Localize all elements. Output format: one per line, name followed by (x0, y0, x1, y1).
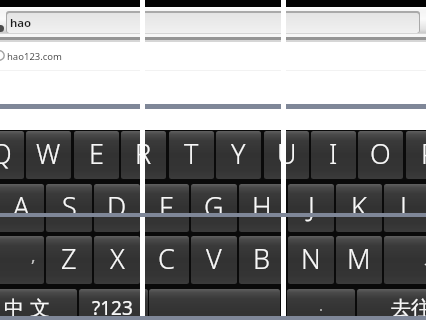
staticText: Z (61, 240, 77, 277)
staticText: C (158, 240, 175, 277)
button[interactable]: P (406, 131, 426, 179)
button[interactable]: Y (216, 131, 261, 179)
button[interactable]: Period (287, 289, 355, 320)
staticText: N (301, 240, 321, 277)
button[interactable]: U (264, 131, 309, 179)
button[interactable]: A (0, 184, 44, 232)
staticText: D (107, 188, 127, 225)
button[interactable]: Delete (384, 236, 426, 284)
button[interactable]: F (143, 184, 189, 232)
button[interactable]: Q (0, 131, 24, 179)
staticText: . (319, 295, 324, 315)
button[interactable]: H (239, 184, 285, 232)
button[interactable]: hao123.com (0, 46, 426, 66)
button[interactable]: L (384, 184, 426, 232)
staticText: T (184, 135, 199, 172)
button[interactable]: Symbols (79, 289, 148, 320)
staticText: 文 (30, 296, 50, 320)
staticText: F (159, 188, 173, 225)
staticText: hao (10, 15, 32, 31)
staticText: O (370, 135, 391, 172)
button[interactable]: Go (357, 289, 426, 320)
button[interactable]: T (169, 131, 214, 179)
button[interactable]: S (46, 184, 92, 232)
staticText: H (252, 188, 272, 225)
staticText: G (204, 188, 224, 225)
staticText: S (62, 188, 77, 225)
button[interactable]: G (191, 184, 237, 232)
button[interactable]: R (121, 131, 166, 179)
button[interactable]: K (336, 184, 382, 232)
staticText: A (13, 188, 30, 225)
button[interactable]: B (239, 236, 285, 284)
button[interactable]: Z (46, 236, 92, 284)
staticText: U (277, 135, 297, 172)
button[interactable]: Shift (0, 236, 44, 284)
staticText: L (400, 188, 414, 225)
button[interactable]: D (94, 184, 140, 232)
button[interactable]: hao (6, 11, 420, 33)
button[interactable]: C (143, 236, 189, 284)
button[interactable]: E (74, 131, 119, 179)
button[interactable]: J (288, 184, 334, 232)
staticText: B (253, 240, 271, 277)
staticText: E (89, 135, 104, 172)
button[interactable]: N (288, 236, 334, 284)
button[interactable]: Space (149, 289, 280, 320)
button[interactable]: V (191, 236, 237, 284)
button[interactable]: I (311, 131, 356, 179)
staticText: Y (231, 135, 246, 172)
button[interactable]: O (358, 131, 403, 179)
staticText: Q (0, 135, 12, 172)
button[interactable]: W (26, 131, 71, 179)
button[interactable]: X (94, 236, 140, 284)
staticText: 中 (4, 296, 24, 320)
staticText: 去往 (391, 296, 426, 320)
staticText: K (351, 188, 367, 225)
staticText: P (421, 135, 426, 172)
staticText: W (36, 135, 61, 172)
staticText: X (110, 240, 125, 277)
staticText: hao123.com (7, 50, 62, 63)
staticText: , (31, 244, 36, 267)
staticText: M (347, 240, 371, 277)
button[interactable]: Switch to Chinese (0, 289, 77, 320)
staticText: ?123 (92, 295, 133, 320)
staticText: I (329, 135, 338, 172)
staticText: R (135, 135, 152, 172)
staticText: V (206, 240, 222, 277)
button[interactable]: M (336, 236, 382, 284)
staticText: J (308, 188, 315, 225)
